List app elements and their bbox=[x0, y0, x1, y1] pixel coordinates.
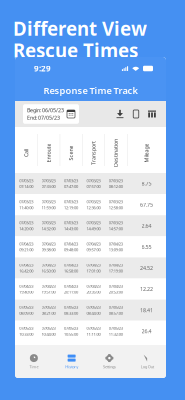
staticText: 09:57:00 bbox=[86, 247, 100, 252]
staticText: History bbox=[65, 364, 78, 369]
staticText: 07/04/23 bbox=[42, 283, 56, 289]
staticText: Begin: 06/05/23 bbox=[27, 107, 64, 114]
staticText: 07/03/23 bbox=[109, 199, 123, 204]
staticText: 07/04/23 bbox=[109, 241, 123, 246]
staticText: 17:19:00 bbox=[109, 268, 123, 273]
button[interactable]: History bbox=[53, 345, 91, 378]
staticText: 12.22 bbox=[140, 285, 153, 293]
staticText: 08:09:00 bbox=[19, 310, 33, 316]
staticText: 07/04/23 bbox=[64, 262, 78, 268]
staticText: 07/05/23 bbox=[109, 326, 123, 331]
staticText: 16:42:00 bbox=[19, 268, 33, 273]
staticText: 11:32:00 bbox=[109, 332, 123, 337]
staticText: 20:53:00 bbox=[109, 289, 123, 295]
staticText: 07/05/23 bbox=[42, 304, 56, 310]
staticText: 10:44:00 bbox=[42, 332, 56, 337]
staticText: Enroute bbox=[39, 149, 58, 157]
staticText: End: 07/05/23 bbox=[27, 114, 60, 121]
staticText: 08:57:00 bbox=[109, 310, 123, 316]
staticText: 14:43:00 bbox=[64, 226, 78, 231]
staticText: 67.75 bbox=[140, 201, 153, 208]
staticText: 8.75 bbox=[141, 180, 151, 187]
staticText: 07/03/23 bbox=[64, 178, 78, 183]
staticText: 07/05/23 bbox=[86, 304, 100, 310]
staticText: 08:33:00 bbox=[64, 310, 78, 316]
staticText: 07/04/23 bbox=[64, 283, 78, 289]
button[interactable]: Chart bbox=[144, 108, 160, 120]
staticText: 07/03/23 bbox=[19, 220, 33, 225]
staticText: Time bbox=[29, 364, 38, 369]
staticText: 10:33:00 bbox=[19, 332, 33, 337]
button[interactable]: Log Out bbox=[128, 345, 166, 378]
staticText: 19:51:00 bbox=[42, 289, 56, 295]
staticText: 08:21:00 bbox=[42, 310, 56, 316]
staticText: 07/03/23 bbox=[64, 220, 78, 225]
staticText: 07/05/23 bbox=[19, 304, 33, 310]
staticText: 07/04/23 bbox=[109, 262, 123, 268]
staticText: 09:38:00 bbox=[42, 247, 56, 252]
staticText: 2.64 bbox=[141, 222, 151, 229]
staticText: 9:29 bbox=[34, 63, 51, 74]
staticText: Different View bbox=[13, 16, 147, 41]
staticText: Transport bbox=[81, 149, 105, 157]
staticText: 07/04/23 bbox=[19, 262, 33, 268]
staticText: 26.4 bbox=[141, 328, 151, 335]
staticText: Destination bbox=[102, 149, 130, 157]
staticText: 07/03/23 bbox=[109, 220, 123, 225]
staticText: 18.41 bbox=[140, 307, 153, 314]
staticText: 07/04/23 bbox=[19, 283, 33, 289]
staticText: 13:09:00 bbox=[109, 247, 123, 252]
staticText: 11:59:00 bbox=[42, 205, 56, 210]
staticText: 07/04/23 bbox=[86, 283, 100, 289]
staticText: 07/03/23 bbox=[42, 178, 56, 183]
staticText: 11:11:00 bbox=[86, 332, 100, 337]
staticText: 09:48:00 bbox=[64, 247, 78, 252]
staticText: 07/03/23 bbox=[19, 199, 33, 204]
staticText: Settings bbox=[103, 364, 116, 369]
staticText: 16:58:00 bbox=[64, 268, 78, 273]
staticText: 09:21:00 bbox=[19, 247, 33, 252]
staticText: 07/05/23 bbox=[64, 326, 78, 331]
staticText: 07:14:00 bbox=[19, 184, 33, 189]
button[interactable]: Download bbox=[112, 108, 128, 120]
staticText: 07/05/23 bbox=[109, 304, 123, 310]
staticText: 12:19:00 bbox=[64, 205, 78, 210]
button[interactable]: Time bbox=[15, 345, 53, 378]
staticText: 07:57:00 bbox=[86, 184, 100, 189]
staticText: 08:44:00 bbox=[86, 310, 100, 316]
staticText: 07/03/23 bbox=[86, 178, 100, 183]
staticText: 07/04/23 bbox=[86, 262, 100, 268]
staticText: 07:33:00 bbox=[42, 184, 56, 189]
staticText: 11:40:00 bbox=[19, 205, 33, 210]
staticText: 07/04/23 bbox=[42, 241, 56, 246]
staticText: 14:32:00 bbox=[42, 226, 56, 231]
staticText: 07:47:00 bbox=[64, 184, 78, 189]
staticText: 07/05/23 bbox=[19, 326, 33, 331]
staticText: 07/03/23 bbox=[109, 178, 123, 183]
button[interactable]: Settings bbox=[90, 345, 128, 378]
staticText: 20:35:00 bbox=[86, 289, 100, 295]
button[interactable]: Begin: 06/05/23 bbox=[23, 104, 79, 124]
staticText: 14:49:00 bbox=[86, 226, 100, 231]
staticText: 07/03/23 bbox=[42, 220, 56, 225]
staticText: 24.52 bbox=[140, 264, 153, 271]
staticText: 07/04/23 bbox=[86, 241, 100, 246]
staticText: Log Out bbox=[141, 364, 154, 369]
staticText: 07/03/23 bbox=[86, 220, 100, 225]
staticText: 12:36:00 bbox=[86, 205, 100, 210]
staticText: 07/05/23 bbox=[64, 304, 78, 310]
staticText: 12:58:00 bbox=[109, 205, 123, 210]
staticText: 07/04/23 bbox=[109, 283, 123, 289]
button[interactable]: Export bbox=[128, 108, 144, 120]
staticText: Rescue Times bbox=[13, 38, 138, 63]
staticText: 07/05/23 bbox=[86, 326, 100, 331]
staticText: 07/03/23 bbox=[64, 199, 78, 204]
staticText: 17:01:00 bbox=[86, 268, 100, 273]
staticText: 07/03/23 bbox=[42, 199, 56, 204]
staticText: 07/03/23 bbox=[19, 178, 33, 183]
staticText: 16:50:00 bbox=[42, 268, 56, 273]
staticText: 14:57:00 bbox=[109, 226, 123, 231]
staticText: 07/04/23 bbox=[19, 241, 33, 246]
staticText: 14:20:00 bbox=[19, 226, 33, 231]
staticText: 07/04/23 bbox=[42, 262, 56, 268]
